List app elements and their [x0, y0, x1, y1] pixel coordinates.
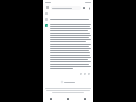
- button[interactable]: [58, 80, 78, 84]
- button[interactable]: Copy: [43, 24, 93, 75]
- button[interactable]: Recents: [76, 96, 93, 102]
- button[interactable]: Bad response: [87, 72, 90, 75]
- button[interactable]: More options: [87, 6, 91, 10]
- button[interactable]: Back: [43, 96, 59, 102]
- button[interactable]: Home: [59, 96, 76, 102]
- button[interactable]: Copy: [79, 72, 82, 75]
- button[interactable]: Menu: [45, 5, 50, 10]
- button[interactable]: Good response: [83, 72, 86, 75]
- button[interactable]: [43, 17, 93, 22]
- button[interactable]: Share: [82, 6, 86, 10]
- button[interactable]: [51, 6, 81, 10]
